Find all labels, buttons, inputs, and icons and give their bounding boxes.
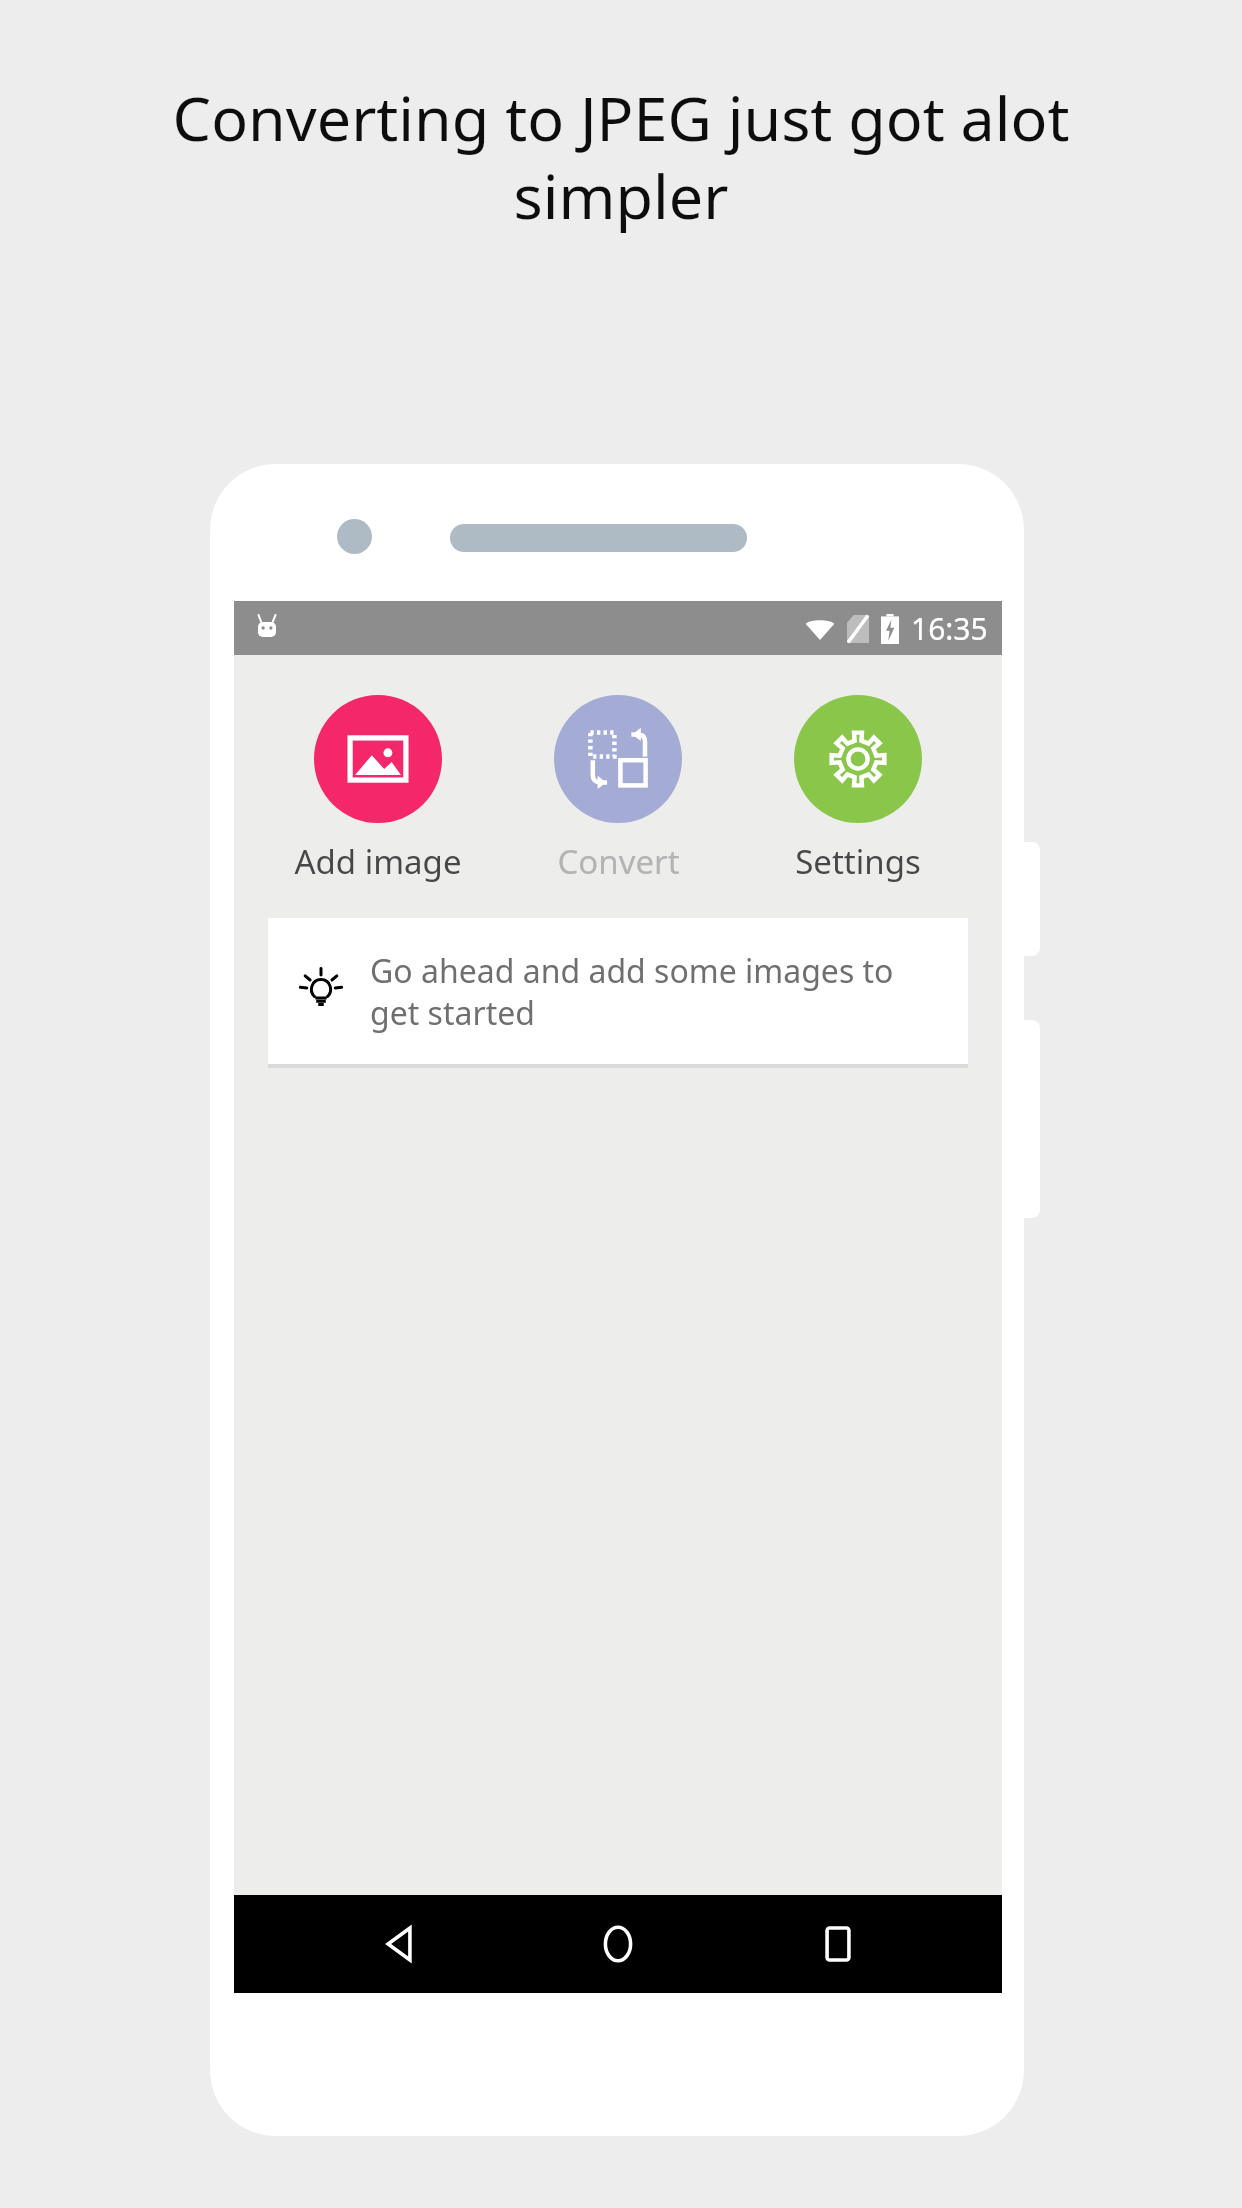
button[interactable]: Add image xyxy=(274,695,482,884)
staticText: Settings xyxy=(795,839,921,884)
staticText: 16:35 xyxy=(911,608,988,649)
button[interactable]: Settings xyxy=(754,695,962,884)
staticText: Converting to JPEG just got alot simpler xyxy=(70,76,1172,237)
button[interactable]: Go ahead and add some images to get star… xyxy=(268,918,968,1064)
staticText: Go ahead and add some images to get star… xyxy=(370,949,944,1034)
button[interactable]: Convert xyxy=(514,695,722,884)
button[interactable]: Back xyxy=(344,1895,454,1993)
button[interactable]: Home xyxy=(563,1895,673,1993)
staticText: Add image xyxy=(294,839,462,884)
button[interactable]: Recents xyxy=(783,1895,893,1993)
other: Settings xyxy=(827,728,889,790)
other: Convert xyxy=(588,729,648,789)
other: Add image xyxy=(347,728,409,790)
staticText: Convert xyxy=(557,839,680,884)
